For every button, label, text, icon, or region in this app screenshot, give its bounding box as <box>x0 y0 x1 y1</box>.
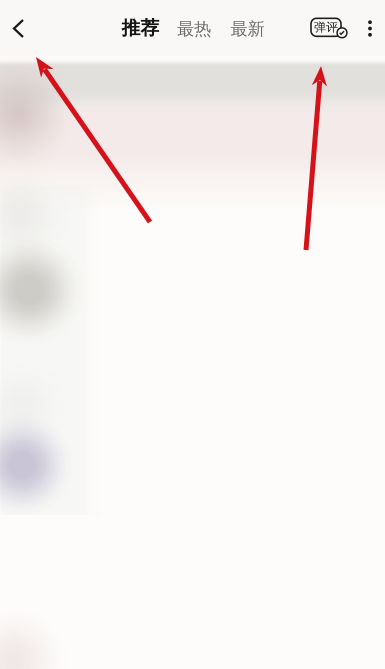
staticText: 推荐 <box>121 16 159 39</box>
button[interactable]: More <box>355 6 385 50</box>
button[interactable]: 最新 <box>219 7 275 51</box>
button[interactable]: 弹评 <box>306 7 354 51</box>
staticText: 弹评 <box>314 20 338 35</box>
button[interactable]: 推荐 <box>110 6 170 50</box>
staticText: 最热 <box>177 18 211 40</box>
staticText: 最新 <box>230 18 264 40</box>
button[interactable]: 最热 <box>166 7 222 51</box>
button[interactable]: Back <box>0 6 48 50</box>
